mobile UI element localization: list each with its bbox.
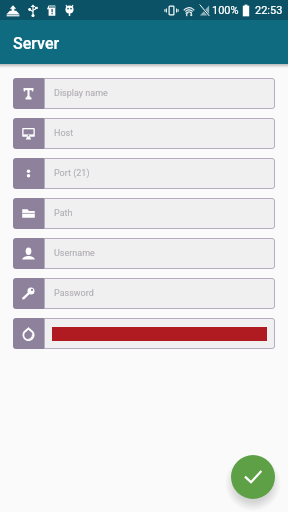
staticText: 22:53 (255, 4, 283, 17)
button[interactable]: Display name (13, 78, 275, 109)
button[interactable]: Username (13, 238, 275, 269)
staticText: Password (54, 288, 94, 299)
button[interactable]: Port (21) (13, 158, 275, 189)
button[interactable]: Path (13, 198, 275, 229)
staticText: Display name (54, 88, 108, 99)
staticText: Host (54, 128, 74, 139)
button[interactable]: Host (13, 118, 275, 149)
staticText: 100% (212, 4, 239, 17)
staticText: Path (54, 208, 73, 219)
button[interactable] (13, 318, 275, 349)
button[interactable]: Save (231, 455, 275, 499)
button[interactable]: Password (13, 278, 275, 309)
staticText: Server (13, 34, 60, 53)
staticText: Port (21) (54, 168, 90, 179)
staticText: Username (54, 248, 95, 259)
